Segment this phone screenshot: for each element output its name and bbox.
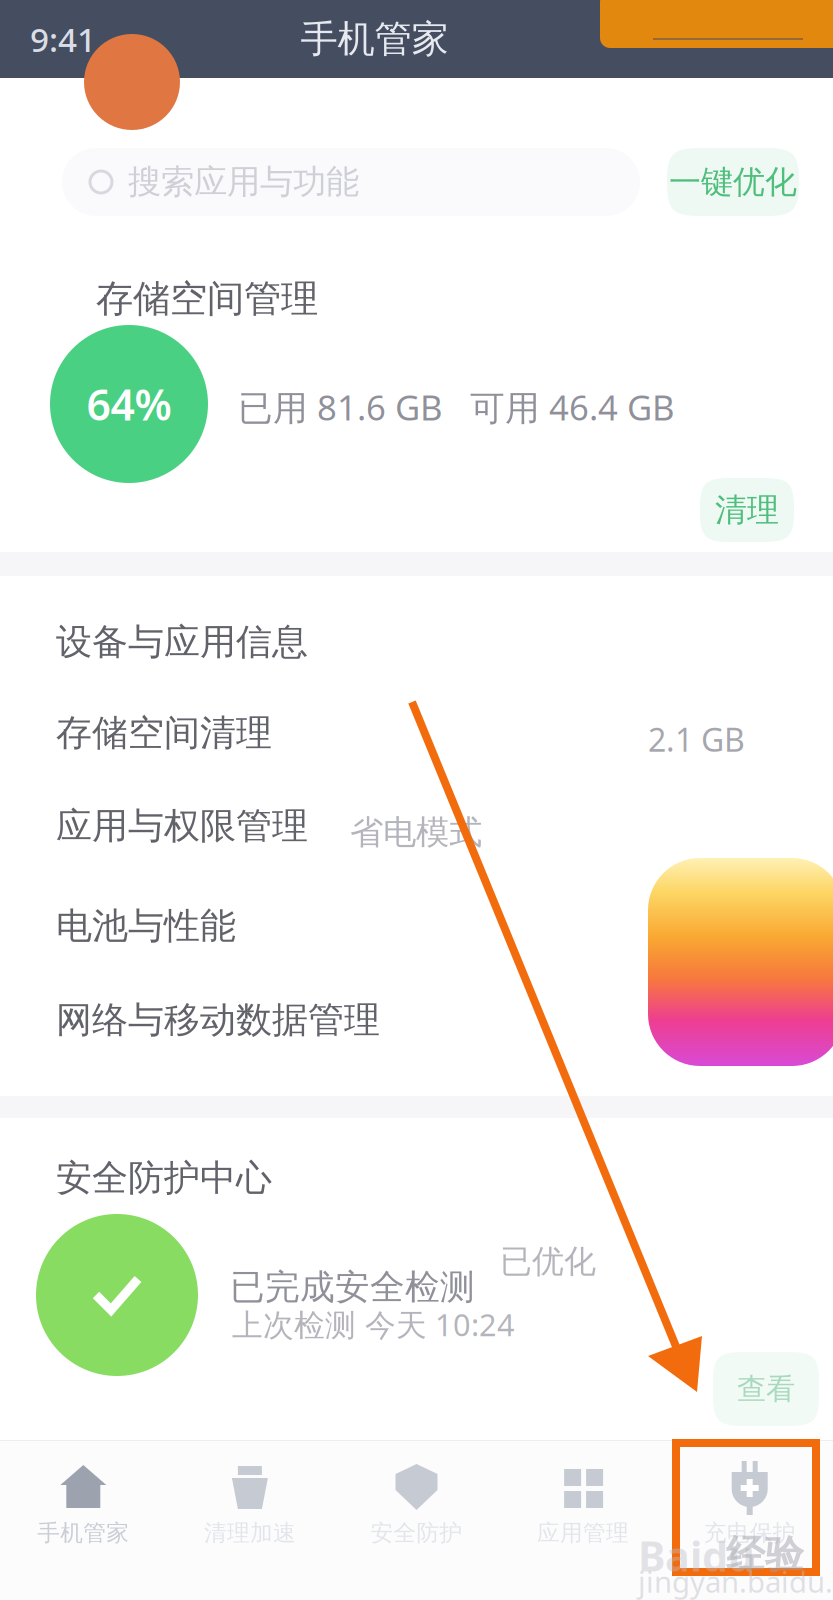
button[interactable]: 应用与权限管理 (0, 782, 833, 870)
button[interactable]: 手机管家 (0, 1441, 167, 1600)
button[interactable]: 安全防护 (333, 1441, 500, 1600)
staticText: 网络与移动数据管理 (56, 998, 380, 1042)
staticText: 应用与权限管理 (56, 804, 308, 848)
staticText: 9:41 (30, 17, 96, 61)
button[interactable]: 存储空间清理 (0, 689, 833, 777)
staticText: 可用 46.4 GB (470, 384, 675, 430)
staticText: 设备与应用信息 (56, 620, 308, 664)
staticText: 充电保护 (704, 1519, 796, 1547)
staticText: 查看 (737, 1371, 795, 1407)
button[interactable]: 一键优化 (667, 148, 799, 216)
button[interactable]: 查看 (713, 1352, 819, 1426)
staticText: 上次检测 今天 10:24 (232, 1304, 515, 1345)
staticText: 安全防护中心 (56, 1156, 272, 1200)
staticText: 2.1 GB (648, 718, 745, 760)
staticText: Baidu (638, 1528, 755, 1583)
staticText: jingyan.baidu.com (638, 1562, 833, 1600)
button[interactable]: 清理加速 (167, 1441, 333, 1600)
staticText: 清理加速 (204, 1519, 296, 1547)
staticText: 手机管家 (37, 1519, 129, 1547)
staticText: 安全防护 (370, 1519, 462, 1547)
staticText: 已完成安全检测 (230, 1266, 475, 1309)
staticText: 应用管理 (537, 1519, 629, 1547)
button[interactable]: 应用管理 (500, 1441, 666, 1600)
staticText: 清理 (715, 490, 779, 530)
staticText: 存储空间管理 (96, 276, 318, 322)
staticText: 省电模式 (350, 812, 482, 853)
staticText: 经验 (726, 1531, 804, 1578)
button[interactable]: 网络与移动数据管理 (0, 976, 833, 1064)
staticText: 手机管家 (300, 16, 448, 62)
staticText: 电池与性能 (56, 904, 236, 948)
button[interactable]: 搜索应用与功能 (62, 148, 640, 216)
staticText: 已用 81.6 GB (238, 384, 443, 430)
staticText: 已优化 (500, 1242, 596, 1281)
staticText: 存储空间清理 (56, 711, 272, 755)
staticText: 64% (86, 376, 171, 432)
staticText: 搜索应用与功能 (128, 161, 359, 202)
staticText: 一键优化 (669, 162, 797, 202)
button[interactable]: 清理 (700, 478, 794, 542)
button[interactable]: 电池与性能 (0, 882, 833, 970)
button[interactable]: 充电保护 (666, 1441, 833, 1600)
